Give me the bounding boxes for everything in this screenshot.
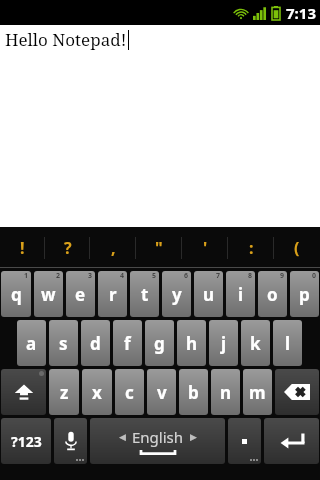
staticText: ' (203, 237, 208, 259)
button[interactable]: s (49, 320, 78, 366)
button[interactable]: q (1, 271, 31, 317)
button[interactable]: b (179, 369, 208, 415)
button[interactable]: : (228, 227, 274, 268)
staticText: ! (20, 237, 25, 259)
staticText: ▶ (190, 432, 197, 442)
staticText: r (109, 283, 117, 306)
button[interactable]: Voice input (54, 418, 87, 464)
staticText: i (238, 283, 244, 306)
button[interactable]: n (211, 369, 240, 415)
staticText: a (26, 332, 37, 355)
staticText: 8 (248, 271, 253, 281)
button[interactable]: " (136, 227, 182, 268)
button[interactable]: ?123 (1, 418, 51, 464)
button[interactable]: a (17, 320, 46, 366)
staticText: ?123 (11, 432, 42, 451)
button[interactable]: o (258, 271, 287, 317)
button[interactable]: w (34, 271, 63, 317)
button[interactable]: g (145, 320, 174, 366)
staticText: , (111, 237, 116, 259)
button[interactable]: Backspace (275, 369, 319, 415)
button[interactable]: f (113, 320, 142, 366)
staticText: z (60, 381, 69, 404)
button[interactable]: m (243, 369, 272, 415)
button[interactable]: j (209, 320, 238, 366)
button[interactable]: Period (228, 418, 261, 464)
staticText: s (59, 332, 68, 355)
staticText: 2 (56, 271, 61, 281)
staticText: c (125, 381, 134, 404)
button[interactable]: ? (45, 227, 90, 268)
button[interactable]: i (226, 271, 255, 317)
staticText: 5 (152, 271, 157, 281)
button[interactable]: , (90, 227, 136, 268)
button[interactable]: h (177, 320, 206, 366)
button[interactable]: Shift (1, 369, 46, 415)
staticText: t (141, 283, 149, 306)
button[interactable]: ◀ (90, 418, 225, 464)
staticText: ( (294, 237, 300, 259)
staticText: m (249, 381, 266, 404)
staticText: k (250, 332, 261, 355)
button[interactable]: y (162, 271, 191, 317)
staticText: u (203, 283, 215, 306)
button[interactable]: z (49, 369, 79, 415)
button[interactable]: l (273, 320, 302, 366)
button[interactable]: Hello Notepad! (0, 25, 320, 227)
staticText: 4 (120, 271, 125, 281)
staticText: d (90, 332, 101, 355)
staticText: v (157, 381, 167, 404)
staticText: 7 (216, 271, 221, 281)
staticText: " (155, 237, 163, 259)
staticText: Hello Notepad! (5, 28, 127, 51)
staticText: f (124, 332, 131, 355)
button[interactable]: p (290, 271, 319, 317)
staticText: ? (64, 237, 72, 259)
staticText: x (92, 381, 102, 404)
staticText: 3 (88, 271, 93, 281)
staticText: ◀ (119, 432, 126, 442)
button[interactable]: ' (182, 227, 228, 268)
button[interactable]: ! (0, 227, 45, 268)
button[interactable]: t (130, 271, 159, 317)
button[interactable]: d (81, 320, 110, 366)
button[interactable]: Enter (264, 418, 319, 464)
button[interactable]: e (66, 271, 95, 317)
staticText: l (285, 332, 291, 355)
staticText: : (249, 237, 254, 259)
button[interactable]: ( (274, 227, 320, 268)
staticText: h (186, 332, 198, 355)
staticText: 9 (280, 271, 285, 281)
staticText: English (132, 427, 184, 447)
button[interactable]: u (194, 271, 223, 317)
staticText: 7:13 (286, 3, 316, 23)
staticText: e (75, 283, 86, 306)
button[interactable]: k (241, 320, 270, 366)
button[interactable]: c (115, 369, 144, 415)
staticText: y (172, 283, 182, 306)
staticText: b (188, 381, 199, 404)
staticText: w (41, 283, 56, 306)
button[interactable]: v (147, 369, 176, 415)
staticText: 0 (312, 271, 317, 281)
button[interactable]: x (82, 369, 112, 415)
button[interactable]: r (98, 271, 127, 317)
staticText: 6 (184, 271, 189, 281)
staticText: g (154, 332, 165, 355)
staticText: q (11, 283, 22, 306)
staticText: p (299, 283, 310, 306)
staticText: n (220, 381, 232, 404)
staticText: o (267, 283, 278, 306)
staticText: 1 (24, 271, 29, 281)
staticText: j (221, 332, 227, 355)
